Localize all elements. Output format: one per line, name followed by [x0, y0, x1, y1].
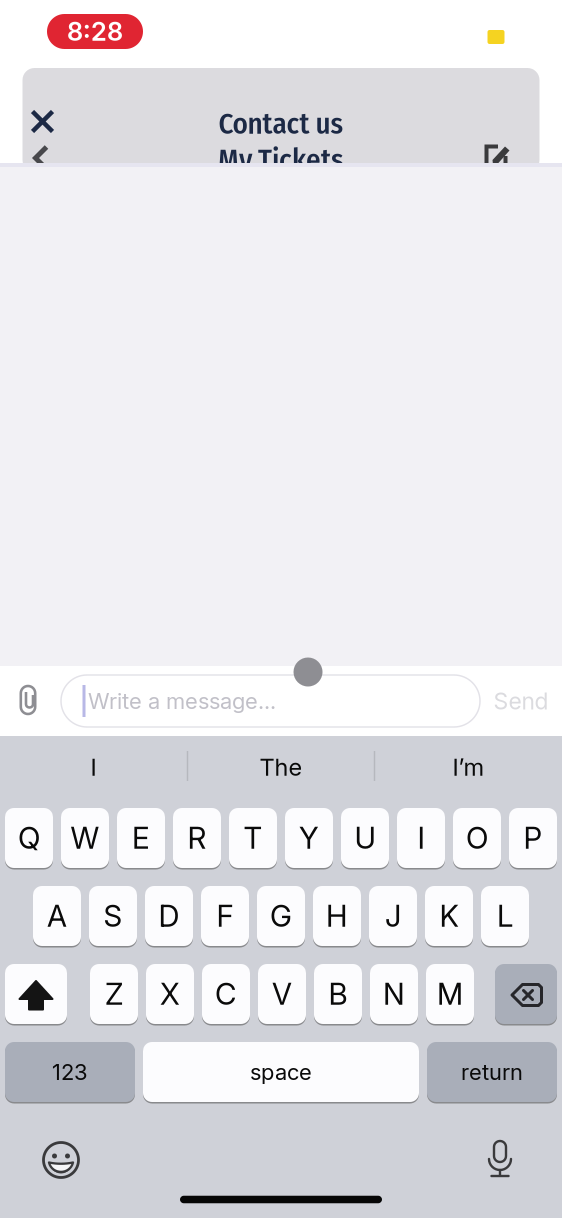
button[interactable]: I [397, 808, 445, 868]
button[interactable]: Q [5, 808, 53, 868]
staticText: I [90, 753, 96, 781]
staticText: F [216, 898, 233, 934]
button[interactable]: New message [484, 144, 512, 172]
staticText: O [466, 820, 488, 856]
staticText: S [103, 898, 122, 934]
button[interactable]: O [453, 808, 501, 868]
button[interactable]: B [314, 964, 362, 1024]
staticText: Send [493, 687, 548, 715]
button[interactable]: space [143, 1042, 419, 1102]
button[interactable]: V [258, 964, 306, 1024]
button[interactable]: D [145, 886, 193, 946]
staticText: P [523, 820, 542, 856]
button[interactable]: S [89, 886, 137, 946]
button[interactable]: Shift [5, 964, 67, 1024]
staticText: Contact us [218, 107, 343, 141]
button[interactable]: Send [493, 687, 548, 715]
button[interactable]: Emoji [43, 1142, 79, 1178]
staticText: 123 [52, 1059, 88, 1085]
button[interactable]: Attach file [17, 685, 41, 717]
staticText: Q [18, 820, 40, 856]
button[interactable]: Scroll to bottom [293, 657, 322, 686]
button[interactable]: P [509, 808, 557, 868]
button[interactable]: Y [285, 808, 333, 868]
staticText: D [158, 898, 179, 934]
button[interactable]: return [427, 1042, 557, 1102]
staticText: H [326, 898, 348, 934]
button[interactable]: Close [22, 101, 62, 141]
button[interactable]: M [426, 964, 474, 1024]
button[interactable]: U [341, 808, 389, 868]
staticText: The [259, 753, 302, 781]
button[interactable]: The [196, 745, 366, 789]
button[interactable]: I [8, 745, 178, 789]
staticText: 8:28 [67, 16, 123, 47]
button[interactable]: Numbers [5, 1042, 135, 1102]
staticText: space [250, 1059, 312, 1085]
button[interactable]: Z [90, 964, 138, 1024]
staticText: I’m [452, 753, 484, 781]
button[interactable]: A [33, 886, 81, 946]
staticText: V [272, 976, 292, 1012]
button[interactable]: W [61, 808, 109, 868]
staticText: R [187, 820, 206, 856]
staticText: A [47, 898, 67, 934]
button[interactable]: Back [33, 145, 49, 171]
staticText: My Tickets [218, 143, 344, 177]
staticText: T [243, 820, 262, 856]
button[interactable]: T [229, 808, 277, 868]
button[interactable]: Dictation [487, 1139, 513, 1179]
staticText: Write a message... [88, 688, 276, 714]
staticText: C [215, 976, 237, 1012]
staticText: X [160, 976, 180, 1012]
staticText: I [417, 820, 424, 856]
button[interactable]: L [481, 886, 529, 946]
button[interactable]: I’m [383, 745, 553, 789]
button[interactable]: K [425, 886, 473, 946]
staticText: J [385, 898, 401, 934]
staticText: E [132, 820, 150, 856]
staticText: W [70, 820, 99, 856]
button[interactable]: C [202, 964, 250, 1024]
staticText: Y [299, 820, 319, 856]
button[interactable]: N [370, 964, 418, 1024]
button[interactable]: R [173, 808, 221, 868]
staticText: return [461, 1059, 523, 1085]
button[interactable]: Recording time [47, 14, 143, 49]
staticText: G [270, 898, 292, 934]
button[interactable]: G [257, 886, 305, 946]
button[interactable]: J [369, 886, 417, 946]
button[interactable]: X [146, 964, 194, 1024]
staticText: U [354, 820, 375, 856]
staticText: Z [105, 976, 123, 1012]
button[interactable]: Write a message [61, 675, 480, 727]
staticText: B [328, 976, 347, 1012]
button[interactable]: E [117, 808, 165, 868]
button[interactable]: F [201, 886, 249, 946]
staticText: K [439, 898, 458, 934]
staticText: M [437, 976, 463, 1012]
staticText: L [497, 898, 513, 934]
staticText: N [383, 976, 405, 1012]
button[interactable]: Delete [495, 964, 557, 1024]
button[interactable]: H [313, 886, 361, 946]
